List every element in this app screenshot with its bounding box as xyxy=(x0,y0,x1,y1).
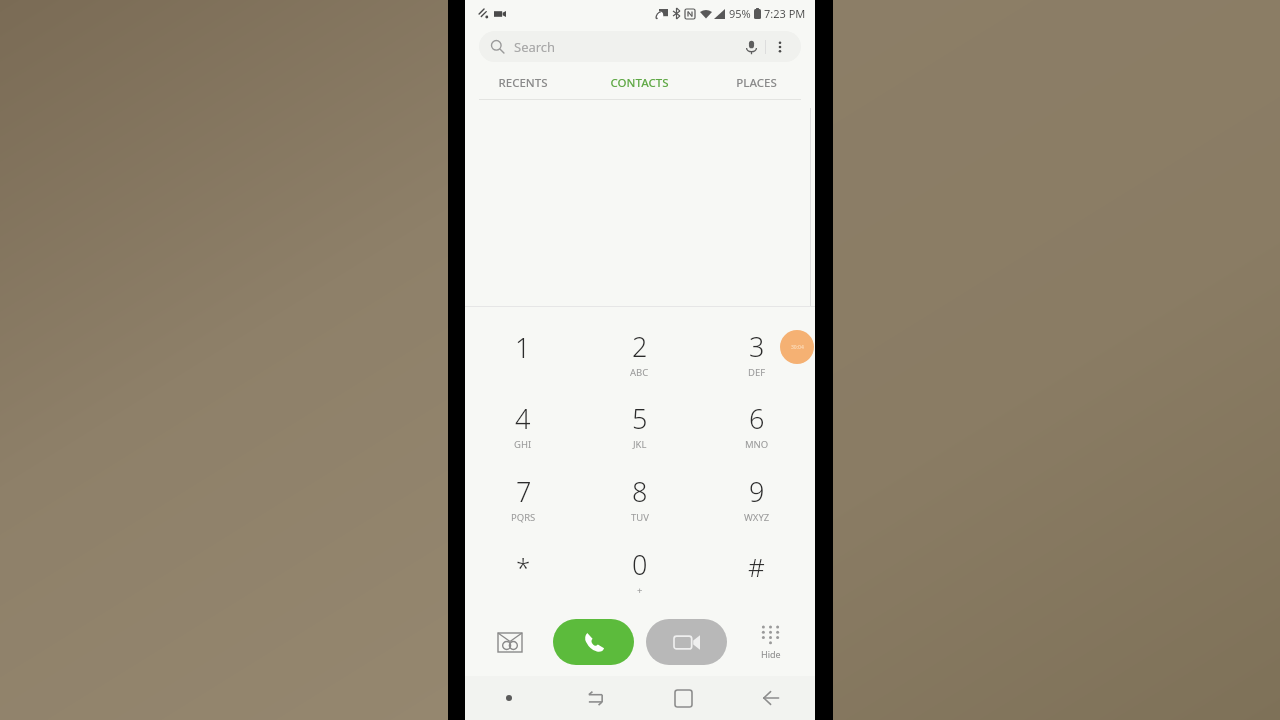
staticText: 0 xyxy=(632,546,648,583)
staticText: 30:04 xyxy=(791,344,804,351)
staticText: CONTACTS xyxy=(610,75,669,91)
button[interactable]: Call xyxy=(553,619,634,665)
button[interactable]: 1 xyxy=(465,317,581,389)
button[interactable]: CONTACTS xyxy=(581,67,698,99)
staticText: 9 xyxy=(749,473,765,510)
staticText: 1 xyxy=(515,329,531,366)
button[interactable]: Voicemail xyxy=(473,608,547,676)
button[interactable]: 0 xyxy=(581,535,698,608)
staticText: 3 xyxy=(749,328,765,365)
staticText: TUV xyxy=(631,511,649,524)
button[interactable]: # xyxy=(698,535,815,608)
staticText: WXYZ xyxy=(744,511,770,524)
button[interactable]: 7 xyxy=(465,462,581,535)
button[interactable]: Video call xyxy=(646,619,727,665)
staticText: + xyxy=(637,584,643,597)
button[interactable]: 8 xyxy=(581,462,698,535)
staticText: GHI xyxy=(514,438,532,451)
staticText: 95% xyxy=(729,6,751,21)
staticText: * xyxy=(516,549,531,584)
button[interactable]: 6 xyxy=(698,389,815,462)
button[interactable]: 9 xyxy=(698,462,815,535)
staticText: MNO xyxy=(745,438,769,451)
button[interactable]: Back xyxy=(727,676,815,720)
staticText: 4 xyxy=(515,400,531,437)
staticText: JKL xyxy=(633,438,647,451)
staticText: DEF xyxy=(748,366,766,379)
button[interactable]: Hide xyxy=(733,608,807,676)
button[interactable]: 2 xyxy=(581,317,698,389)
button[interactable]: 3 xyxy=(698,317,815,389)
button[interactable]: Home xyxy=(639,676,727,720)
staticText: ABC xyxy=(630,366,649,379)
button[interactable]: PLACES xyxy=(698,67,815,99)
staticText: Hide xyxy=(761,648,781,660)
button[interactable]: RECENTS xyxy=(465,67,581,99)
staticText: RECENTS xyxy=(498,75,548,91)
button[interactable]: Assistant xyxy=(465,676,552,720)
button[interactable]: More options xyxy=(770,37,790,57)
staticText: Search xyxy=(514,38,556,56)
staticText: PQRS xyxy=(511,511,536,524)
staticText: 5 xyxy=(632,400,648,437)
staticText: 7 xyxy=(516,473,532,510)
button[interactable]: 5 xyxy=(581,389,698,462)
staticText: 8 xyxy=(632,473,648,510)
staticText: 2 xyxy=(632,328,648,365)
button[interactable]: * xyxy=(465,535,581,608)
button[interactable]: Search xyxy=(479,31,801,62)
button[interactable]: Voice search xyxy=(740,36,762,58)
staticText: 6 xyxy=(749,400,765,437)
button[interactable]: Recents xyxy=(552,676,639,720)
staticText: # xyxy=(748,549,765,584)
staticText: PLACES xyxy=(736,75,777,91)
staticText: 7:23 PM xyxy=(764,6,806,21)
button[interactable]: 4 xyxy=(465,389,581,462)
